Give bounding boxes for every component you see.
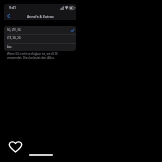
button[interactable]: LTE, 3G, 2G — [4, 34, 76, 42]
button[interactable]: Back — [4, 12, 12, 20]
staticText: Wenn 5G nicht verfügbar ist, wird LTE ve… — [7, 52, 58, 59]
button[interactable]: Favourite — [7, 138, 24, 155]
staticText: 9:41 — [9, 5, 17, 10]
staticText: Anrufe & Extras — [27, 14, 54, 19]
staticText: LTE, 3G, 2G — [7, 36, 21, 40]
staticText: Aus — [7, 45, 12, 49]
button[interactable]: Aus — [4, 43, 76, 51]
button[interactable]: 5G, LTE, 3G — [4, 26, 76, 34]
staticText: 5G, LTE, 3G — [7, 28, 21, 32]
